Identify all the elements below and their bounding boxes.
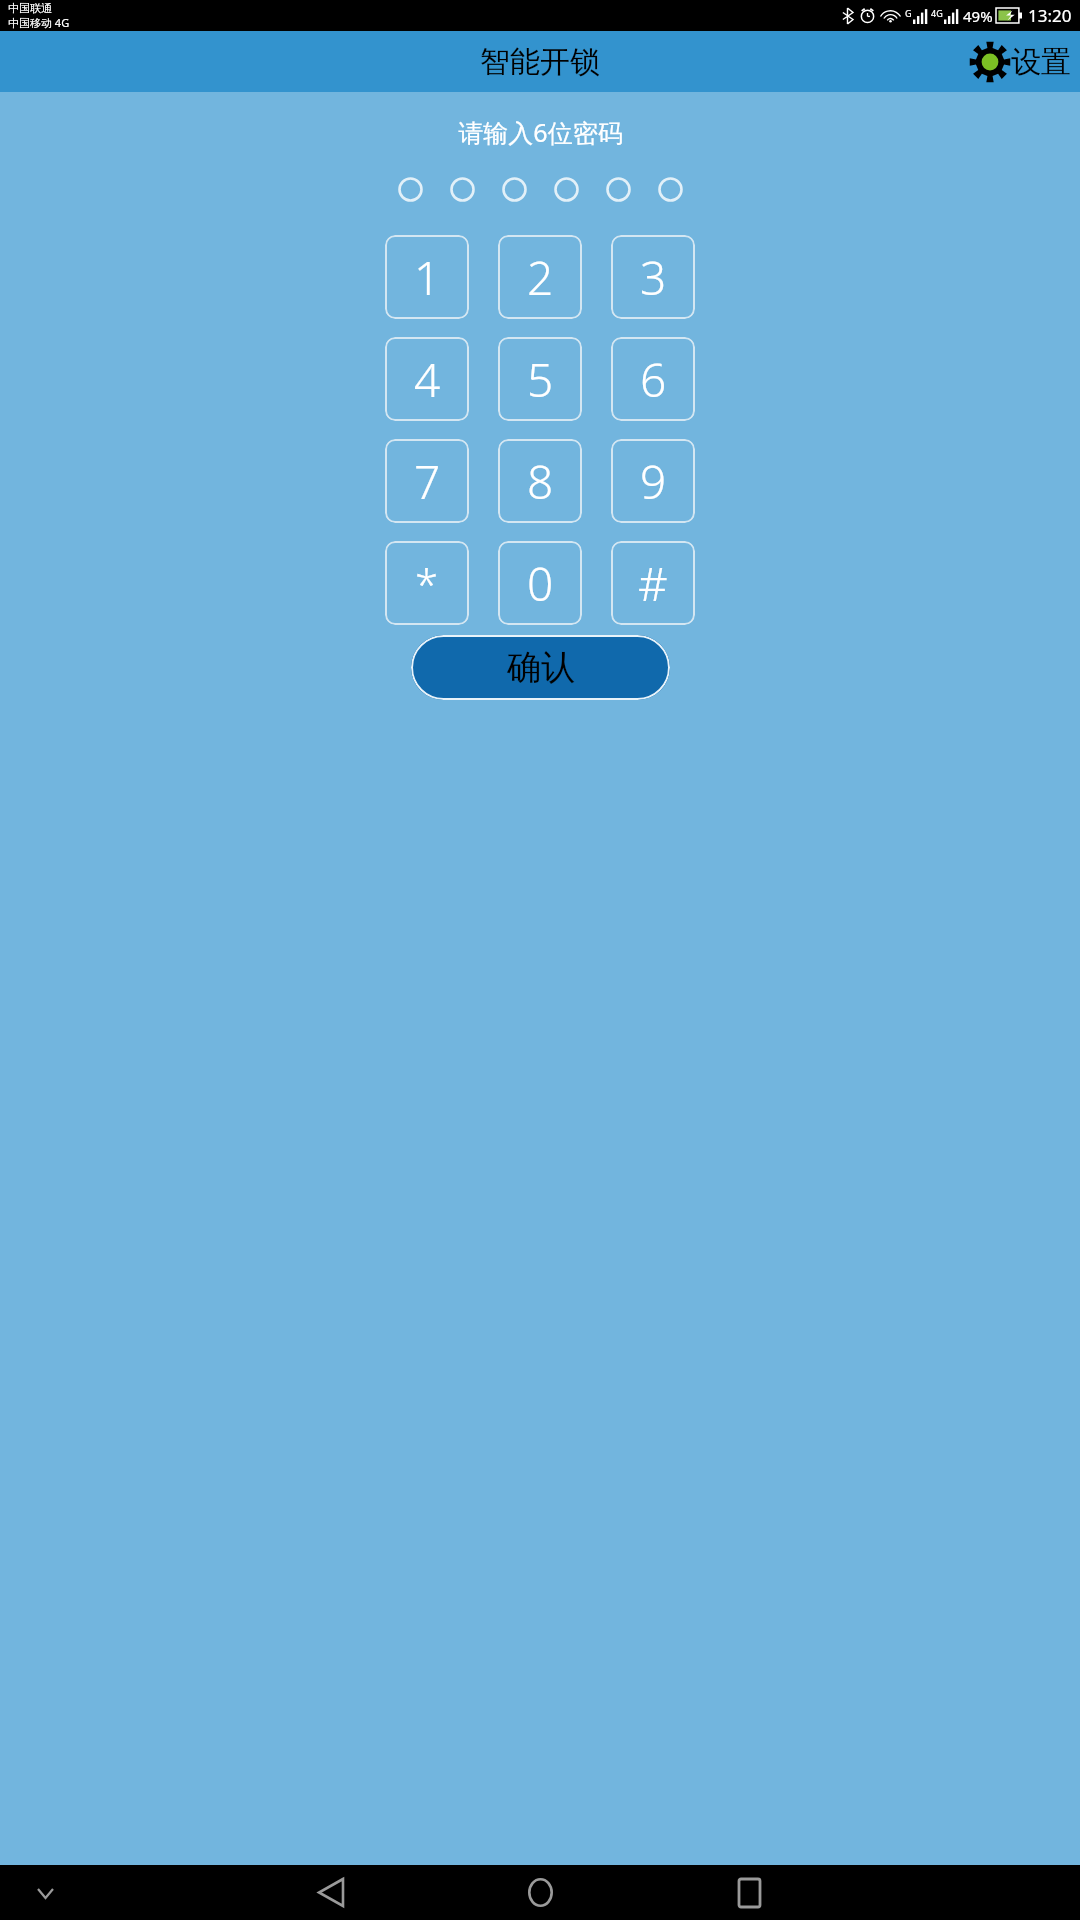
staticText: 中国移动 4G: [8, 15, 70, 30]
staticText: 9: [640, 450, 667, 513]
button[interactable]: 确认: [411, 635, 670, 700]
staticText: *: [415, 555, 439, 612]
button[interactable]: 6: [611, 337, 695, 421]
staticText: 中国联通: [8, 1, 52, 15]
button[interactable]: 4: [385, 337, 469, 421]
staticText: 0: [527, 552, 554, 615]
staticText: 13:20: [1028, 4, 1072, 27]
staticText: 6: [640, 348, 667, 411]
staticText: 1: [414, 246, 441, 309]
button[interactable]: 1: [385, 235, 469, 319]
staticText: 智能开锁: [480, 43, 600, 81]
staticText: 4: [414, 348, 441, 411]
staticText: 请输入6位密码: [458, 115, 623, 149]
staticText: 设置: [1011, 43, 1071, 81]
staticText: 3: [640, 246, 667, 309]
staticText: 8: [527, 450, 554, 513]
staticText: 5: [527, 348, 554, 411]
button[interactable]: #: [611, 541, 695, 625]
button[interactable]: Back: [302, 1865, 360, 1920]
button[interactable]: 2: [498, 235, 582, 319]
staticText: 49%: [963, 6, 993, 26]
staticText: 确认: [507, 646, 575, 689]
staticText: 4G: [931, 7, 943, 19]
button[interactable]: 3: [611, 235, 695, 319]
button[interactable]: 7: [385, 439, 469, 523]
button[interactable]: Home: [511, 1865, 569, 1920]
other: Settings: [969, 41, 1011, 83]
button[interactable]: 8: [498, 439, 582, 523]
staticText: G: [905, 7, 912, 19]
staticText: 2: [527, 246, 554, 309]
staticText: #: [638, 552, 668, 615]
button[interactable]: *: [385, 541, 469, 625]
button[interactable]: 5: [498, 337, 582, 421]
staticText: 7: [414, 450, 441, 513]
button[interactable]: Settings: [960, 37, 1080, 87]
button[interactable]: Recents: [720, 1865, 778, 1920]
button[interactable]: 0: [498, 541, 582, 625]
button[interactable]: 9: [611, 439, 695, 523]
button[interactable]: Hide: [28, 1876, 62, 1910]
